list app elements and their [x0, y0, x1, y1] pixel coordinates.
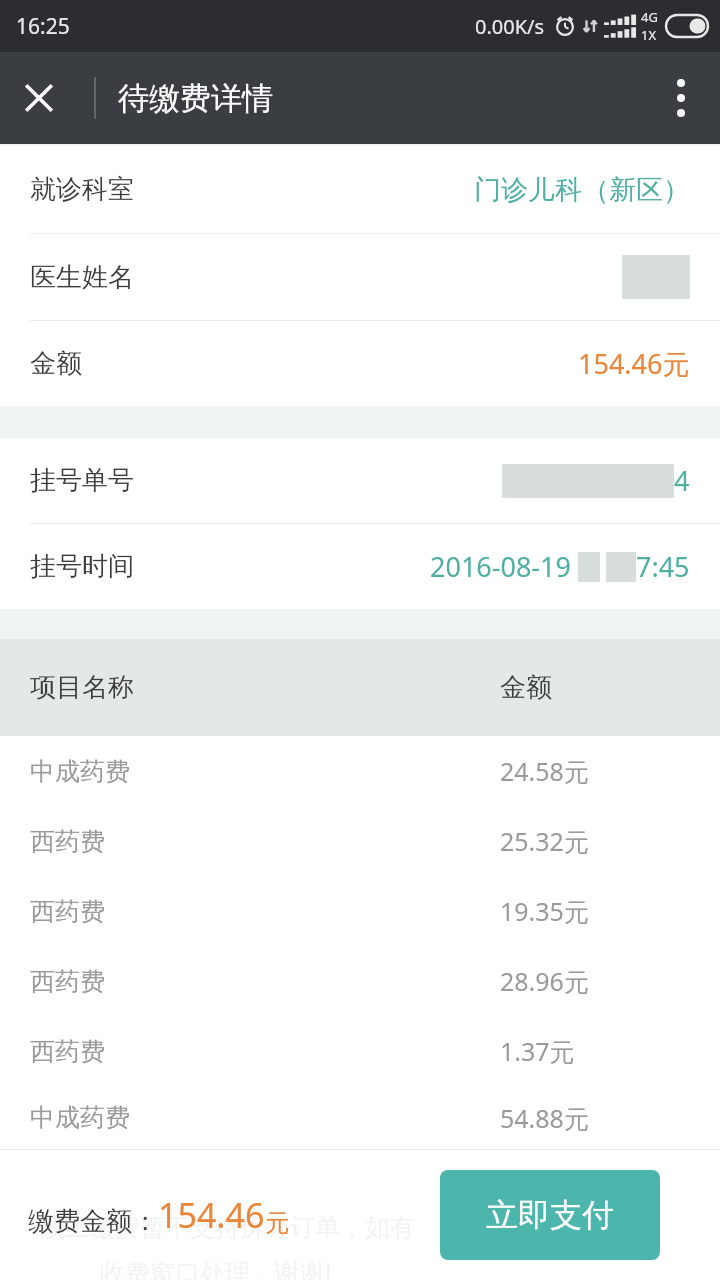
staticText: 挂号时间: [30, 550, 134, 583]
staticText: 1X: [641, 26, 657, 44]
staticText: 门诊儿科（新区）: [474, 173, 690, 207]
staticText: 西药费: [30, 826, 105, 857]
staticText: 中成药费: [30, 756, 130, 787]
button[interactable]: 金额: [0, 321, 720, 406]
staticText: 16:25: [16, 12, 70, 41]
staticText: 7:45: [636, 548, 690, 585]
staticText: 2016-08-19: [430, 548, 578, 585]
staticText: 154.46: [158, 1192, 265, 1238]
staticText: 1.37元: [500, 1034, 575, 1068]
staticText: 就诊科室: [30, 173, 134, 206]
staticText: 19.35元: [500, 894, 589, 928]
button[interactable]: 西药费: [0, 876, 720, 946]
staticText: 金额: [30, 347, 82, 380]
button[interactable]: 西药费: [0, 946, 720, 1016]
button[interactable]: 挂号时间: [0, 524, 720, 609]
staticText: 西药费: [30, 1036, 105, 1067]
staticText: 西药费: [30, 966, 105, 997]
button[interactable]: 医生姓名: [0, 234, 720, 320]
staticText: 54.88元: [500, 1101, 589, 1135]
staticText: 25.32元: [500, 824, 589, 858]
button[interactable]: 中成药费: [0, 1086, 720, 1149]
staticText: 待缴费详情: [118, 79, 273, 118]
staticText: 4G: [641, 8, 658, 26]
staticText: 元: [265, 1208, 289, 1238]
staticText: 154.46元: [578, 345, 690, 382]
staticText: 医生姓名: [30, 261, 134, 294]
staticText: 4: [674, 462, 690, 499]
button[interactable]: 西药费: [0, 1016, 720, 1086]
staticText: 金额: [500, 671, 552, 704]
button[interactable]: 就诊科室: [0, 146, 720, 233]
staticText: 挂号单号: [30, 464, 134, 497]
staticText: 西药费: [30, 896, 105, 927]
button[interactable]: 西药费: [0, 806, 720, 876]
button[interactable]: Close: [0, 52, 78, 144]
staticText: 立即支付: [486, 1195, 614, 1235]
staticText: 0.00K/s: [475, 13, 545, 40]
staticText: 中成药费: [30, 1102, 130, 1133]
staticText: 线上缴费暂不支持拆分订单，如有: [40, 1212, 720, 1243]
button[interactable]: More options: [642, 52, 720, 144]
staticText: 缴费金额：: [28, 1205, 158, 1238]
staticText: 收费窗口处理，谢谢!: [100, 1255, 720, 1280]
button[interactable]: 立即支付: [440, 1170, 660, 1260]
staticText: 28.96元: [500, 964, 589, 998]
staticText: 24.58元: [500, 754, 589, 788]
button[interactable]: 挂号单号: [0, 438, 720, 523]
button[interactable]: 中成药费: [0, 736, 720, 806]
staticText: 项目名称: [30, 671, 134, 704]
